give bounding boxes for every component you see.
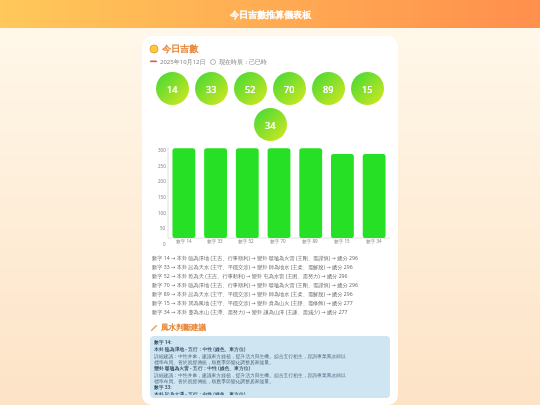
staticText: 詳細建議：中性井象，建議東方綠植，提升活力與生機。綜合五行相生，容詢專業風水師以 <box>154 372 346 378</box>
button[interactable]: 33 <box>195 72 228 105</box>
staticText: 數字 52 <box>238 238 254 244</box>
staticText: 14 <box>167 83 178 95</box>
staticText: 34 <box>265 119 276 131</box>
staticText: 數字 14 → 本卦 臨為澤地 (主吉、行事順利) → 變卦 噬嗑為火雷 (主剛… <box>152 254 358 261</box>
button[interactable]: 70 <box>273 72 306 105</box>
staticText: 數字 34 <box>366 238 382 244</box>
staticText: 100 <box>158 210 166 216</box>
staticText: 數字 70 → 本卦 臨為澤地 (主吉、行事順利) → 變卦 噬嗑為火雷 (主剛… <box>152 281 358 288</box>
staticText: 數字 89 → 本卦 訟為天水 (主守、平穩交涉) → 變卦 師為地水 (主柔、… <box>152 290 353 297</box>
staticText: 數字 33 <box>207 238 223 244</box>
staticText: 本卦 訟為大澤 - 五行：中性 (綠色、東方位) <box>154 391 246 395</box>
staticText: 今日吉數 <box>162 43 198 54</box>
staticText: 33 <box>206 83 217 95</box>
staticText: 現在時辰：己巳時 <box>219 58 267 66</box>
staticText: 89 <box>323 83 334 95</box>
button[interactable]: 89 <box>312 72 345 105</box>
button[interactable]: 34 <box>254 108 287 141</box>
staticText: 52 <box>245 83 256 95</box>
staticText: 標準布局。善於易經傳統，順應季節變化調整居家能量。 <box>154 378 274 384</box>
staticText: 數字 34 → 本卦 蹇為水山 (主滯、需努力) → 變卦 謙為山澤 (主謙、需… <box>152 308 348 315</box>
staticText: 300 <box>158 147 166 153</box>
staticText: 0 <box>163 241 166 247</box>
staticText: 標準布局。善於易經傳統，順應季節變化調整居家能量。 <box>154 359 274 365</box>
staticText: 數字 33 → 本卦 訟為天水 (主守、平穩交涉) → 變卦 師為地水 (主柔、… <box>152 263 353 270</box>
button[interactable]: 52 <box>234 72 267 105</box>
staticText: 變卦 噬嗑為火雷 - 五行：中性 (綠色、東方位) <box>154 365 251 372</box>
staticText: 本卦 臨為澤地 - 五行：中性 (綠色、東方位) <box>154 346 246 353</box>
staticText: 數字 70 <box>270 238 286 244</box>
staticText: 15 <box>362 83 373 95</box>
staticText: 2025年10月12日 <box>160 58 206 66</box>
button[interactable]: 14 <box>156 72 189 105</box>
staticText: 數字 14 <box>176 238 192 244</box>
staticText: 數字 89 <box>302 238 318 244</box>
button[interactable]: 15 <box>351 72 384 105</box>
staticText: 150 <box>158 194 166 200</box>
staticText: 數字 15 <box>334 238 350 244</box>
staticText: 數字 52 → 本卦 乾為天 (主吉、行事順利) → 變卦 屯為水雷 (主困、需… <box>152 272 348 279</box>
staticText: 250 <box>158 163 166 169</box>
staticText: 風水判斷建議 <box>161 323 206 332</box>
staticText: 詳細建議：中性井象，建議東方綠植，提升活力與生機。綜合五行相生，容詢專業風水師以 <box>154 353 346 359</box>
staticText: 數字 33: <box>154 384 172 391</box>
staticText: 數字 15 → 本卦 巽為風地 (主守、平穩交涉) → 變卦 賁為山火 (主靜、… <box>152 299 353 306</box>
staticText: 數字 14: <box>154 339 172 346</box>
staticText: 今日吉數推算儀表板 <box>230 9 311 20</box>
staticText: 70 <box>284 83 295 95</box>
staticText: 200 <box>158 178 166 184</box>
staticText: 50 <box>160 225 166 231</box>
